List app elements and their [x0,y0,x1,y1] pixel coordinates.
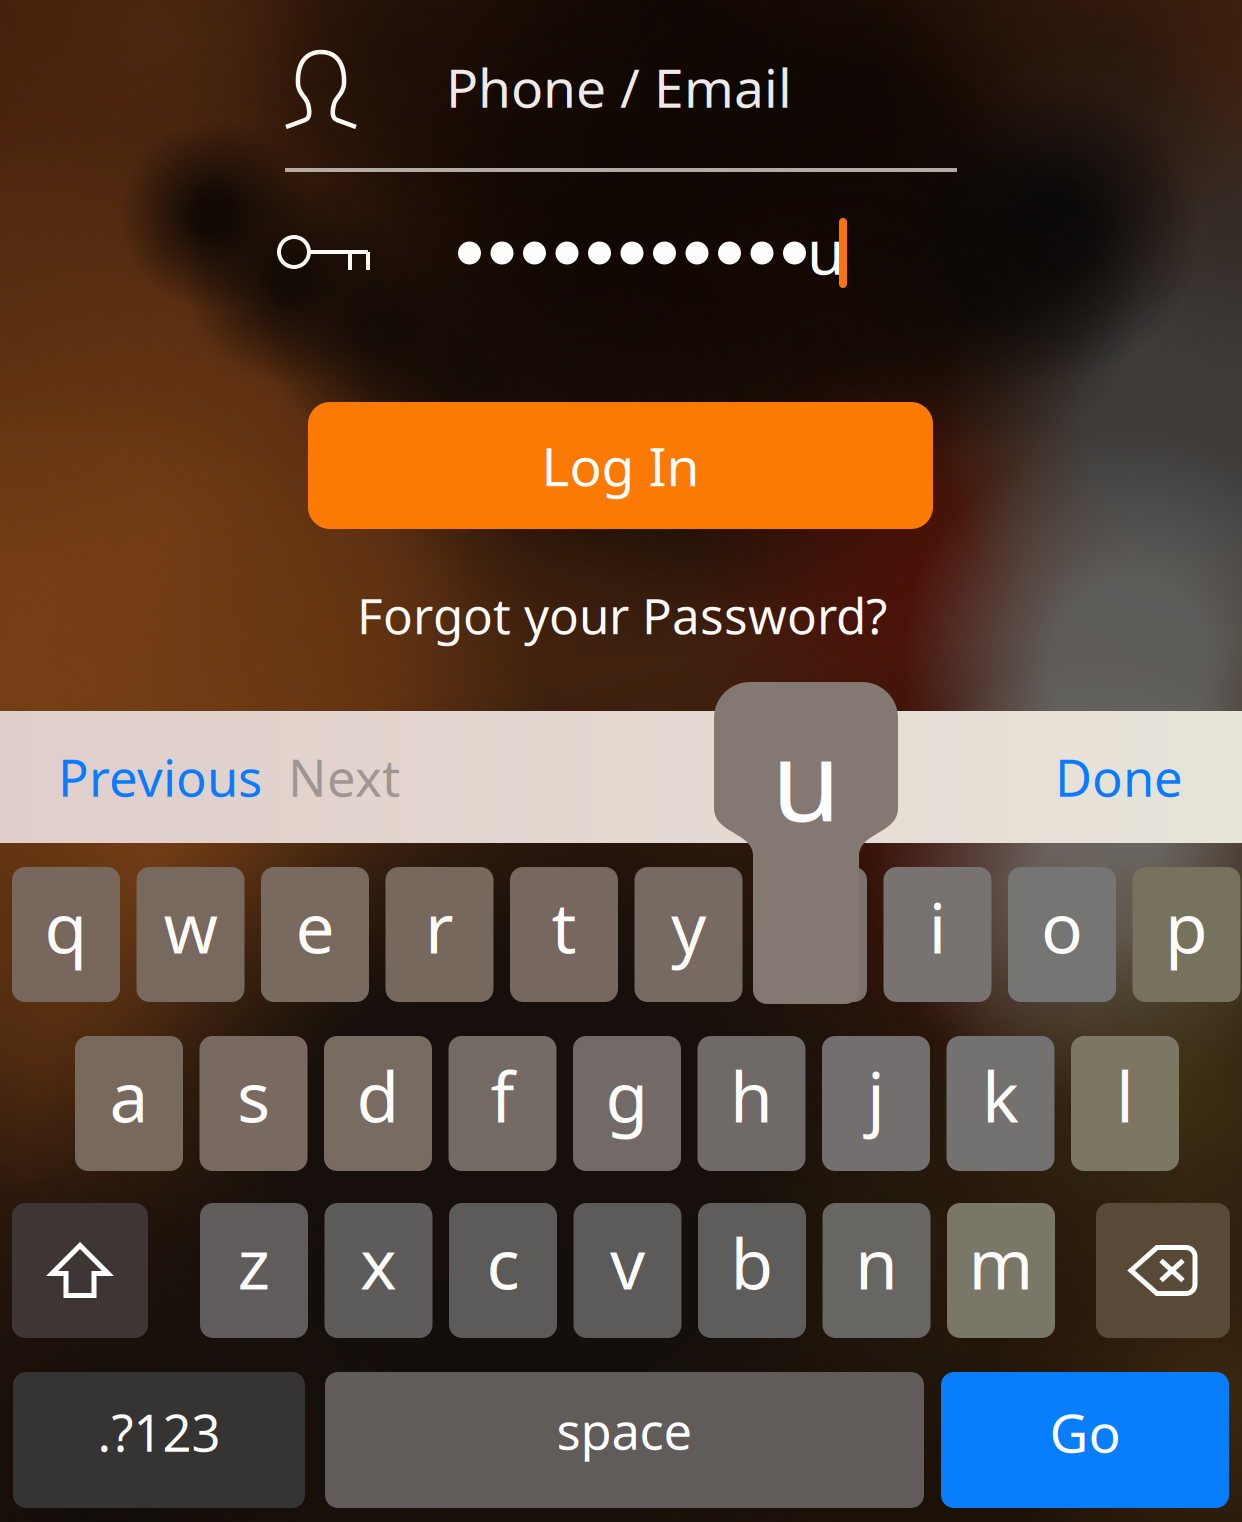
button[interactable]: Next [276,717,412,837]
button[interactable]: Shift [0,0,1242,1522]
staticText: space [556,1396,692,1464]
button[interactable]: d [324,1036,432,1171]
staticText: c [486,1216,519,1309]
button[interactable]: x [324,1203,432,1338]
button[interactable]: Delete [0,0,1242,1522]
staticText: v [610,1216,645,1309]
button[interactable]: Forgot your Password? [357,582,887,648]
button[interactable]: j [822,1036,930,1171]
staticText: e [295,880,334,973]
button[interactable]: c [449,1203,557,1338]
button[interactable]: Done [1041,717,1197,837]
button[interactable]: n [822,1203,930,1338]
staticText: n [855,1216,898,1309]
button[interactable]: t [510,867,618,1002]
button[interactable]: i [883,867,991,1002]
button[interactable]: q [12,867,120,1002]
button[interactable]: o [1008,867,1116,1002]
button[interactable]: .?123 [0,0,1242,1522]
button[interactable]: a [75,1036,183,1171]
staticText: a [109,1049,148,1142]
staticText: d [356,1049,399,1142]
staticText: u [807,210,845,292]
staticText: b [730,1216,773,1309]
staticText: r [425,880,454,973]
staticText: t [551,880,576,973]
button[interactable]: r [385,867,493,1002]
staticText: f [490,1049,514,1142]
staticText: l [1116,1049,1134,1142]
button[interactable]: w [136,867,244,1002]
button[interactable] [759,867,867,1002]
button[interactable]: f [448,1036,556,1171]
staticText: g [605,1049,648,1142]
button[interactable]: space [0,0,1242,1522]
staticText: i [928,880,946,973]
button[interactable]: m [947,1203,1055,1338]
button[interactable]: l [1071,1036,1179,1171]
staticText: z [237,1216,270,1309]
staticText: .?123 [97,1398,220,1466]
button[interactable]: Previous [46,717,274,837]
button[interactable]: e [261,867,369,1002]
staticText: p [1165,880,1208,973]
button[interactable]: v [573,1203,681,1338]
staticText: Phone / Email [446,52,792,122]
staticText: h [730,1049,773,1142]
staticText: u [771,704,840,852]
staticText: j [867,1049,885,1142]
button[interactable]: z [200,1203,308,1338]
button[interactable]: s [199,1036,307,1171]
button[interactable]: p [1132,867,1240,1002]
button[interactable]: y [634,867,742,1002]
staticText: x [360,1216,397,1309]
staticText: w [163,880,217,973]
staticText: k [982,1049,1019,1142]
staticText: Log In [541,430,699,501]
staticText: q [44,880,87,973]
button[interactable]: Log In [308,402,933,529]
staticText: o [1041,880,1083,973]
button[interactable]: Go [0,0,1242,1522]
staticText: Go [1049,1397,1120,1467]
button[interactable]: g [573,1036,681,1171]
staticText: Done [1055,743,1183,811]
staticText: y [671,880,706,973]
staticText: Previous [58,743,262,811]
button[interactable]: k [946,1036,1054,1171]
button[interactable]: b [698,1203,806,1338]
staticText: Next [288,743,400,811]
staticText: m [968,1216,1033,1309]
staticText: s [237,1049,270,1142]
staticText: Forgot your Password? [357,582,887,648]
button[interactable]: h [697,1036,805,1171]
